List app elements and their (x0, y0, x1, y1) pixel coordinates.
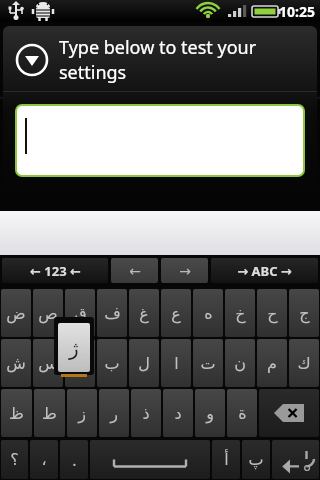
button[interactable]: → (161, 258, 208, 283)
staticText: ج (299, 304, 310, 323)
button[interactable]: ر (99, 389, 129, 437)
staticText: ك (297, 354, 311, 373)
staticText: ب (104, 354, 120, 373)
button[interactable] (17, 106, 303, 175)
staticText: ← (129, 263, 141, 279)
staticText: ض (6, 304, 26, 323)
button[interactable]: پ (242, 440, 270, 479)
staticText: → (179, 263, 191, 279)
staticText: ق (74, 304, 87, 323)
button[interactable]: ب (97, 339, 127, 387)
staticText: 10:25 (279, 2, 315, 21)
button[interactable]: س (33, 339, 63, 387)
button[interactable]: ا (161, 339, 191, 387)
staticText: ل (138, 354, 150, 373)
button[interactable]: و (195, 389, 225, 437)
staticText: ة (238, 404, 247, 423)
staticText: ش (6, 354, 26, 373)
button[interactable]: م (257, 339, 287, 387)
staticText: ؟ (10, 450, 19, 469)
button[interactable]: ي (65, 339, 95, 387)
button[interactable]: ك (289, 339, 319, 387)
staticText: ز (78, 404, 86, 423)
button[interactable]: ج (289, 289, 319, 337)
staticText: ي (74, 354, 87, 373)
staticText: ف (104, 304, 121, 323)
button[interactable]: Space (90, 440, 210, 479)
button[interactable]: ه (193, 289, 223, 337)
staticText: ه (204, 304, 213, 323)
staticText: ذ (142, 404, 150, 423)
button[interactable]: ض (1, 289, 31, 337)
button[interactable]: أ (212, 440, 240, 479)
staticText: پ (248, 450, 264, 469)
button[interactable]: ز (67, 389, 97, 437)
button[interactable]: ص (33, 289, 63, 337)
staticText: . (72, 449, 77, 471)
staticText: Click for text testing (14, 69, 192, 95)
button[interactable]: ← 123 ← (2, 258, 108, 283)
staticText: ظ (9, 404, 24, 423)
button[interactable]: ، (30, 440, 58, 479)
button[interactable]: ظ (1, 389, 32, 437)
staticText: Type below to test your settings (59, 35, 307, 85)
button[interactable]: ف (97, 289, 127, 337)
button[interactable]: ة (227, 389, 257, 437)
staticText: ع (171, 304, 181, 323)
button[interactable]: ط (34, 389, 65, 437)
button[interactable]: خ (225, 289, 255, 337)
staticText: ح (267, 304, 278, 323)
staticText: ، (41, 450, 47, 469)
staticText: م (267, 354, 277, 373)
button[interactable]: د (163, 389, 193, 437)
button[interactable]: ؟ (1, 440, 28, 479)
staticText: د (174, 404, 182, 423)
staticText: ← 123 ← (30, 262, 81, 280)
button[interactable]: ← (111, 258, 158, 283)
staticText: خ (235, 304, 246, 323)
button[interactable]: ن (225, 339, 255, 387)
staticText: → ABC → (237, 262, 292, 280)
staticText: ن (234, 354, 246, 373)
button[interactable]: ع (161, 289, 191, 337)
staticText: ص (38, 304, 58, 323)
staticText: أ (224, 450, 229, 469)
button[interactable]: Enter (272, 440, 319, 479)
button[interactable]: . (60, 440, 88, 479)
staticText: ط (42, 404, 57, 423)
button[interactable]: → ABC → (211, 258, 318, 283)
staticText: غ (139, 304, 149, 323)
button[interactable]: ح (257, 289, 287, 337)
button[interactable]: غ (129, 289, 159, 337)
staticText: ت (200, 354, 216, 373)
button[interactable]: ل (129, 339, 159, 387)
staticText: ژ (69, 336, 79, 359)
button[interactable]: Delete (259, 389, 319, 437)
button[interactable]: ذ (131, 389, 161, 437)
staticText: س (38, 354, 58, 373)
button[interactable]: ق (65, 289, 95, 337)
staticText: ا (174, 354, 179, 373)
button[interactable]: ش (1, 339, 31, 387)
button[interactable]: ت (193, 339, 223, 387)
staticText: و (206, 404, 214, 423)
staticText: ر (110, 404, 118, 423)
